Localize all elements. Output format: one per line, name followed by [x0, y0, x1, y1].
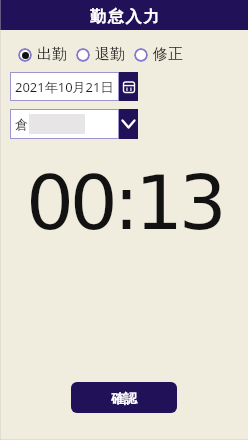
- button[interactable]: 退勤: [76, 45, 125, 64]
- button[interactable]: 修正: [134, 45, 183, 64]
- button[interactable]: 出勤: [18, 45, 67, 64]
- staticText: 出勤: [37, 45, 67, 64]
- staticText: 退勤: [95, 45, 125, 64]
- button[interactable]: 2021年10月21日: [10, 72, 138, 101]
- staticText: 倉: [15, 116, 28, 132]
- staticText: 2021年10月21日: [15, 78, 114, 96]
- button[interactable]: 倉: [10, 109, 138, 139]
- staticText: 勤怠入力: [89, 7, 160, 27]
- staticText: 確認: [111, 390, 137, 406]
- staticText: 修正: [153, 45, 183, 64]
- button[interactable]: 確認: [71, 382, 177, 413]
- staticText: 00:13: [26, 159, 223, 247]
